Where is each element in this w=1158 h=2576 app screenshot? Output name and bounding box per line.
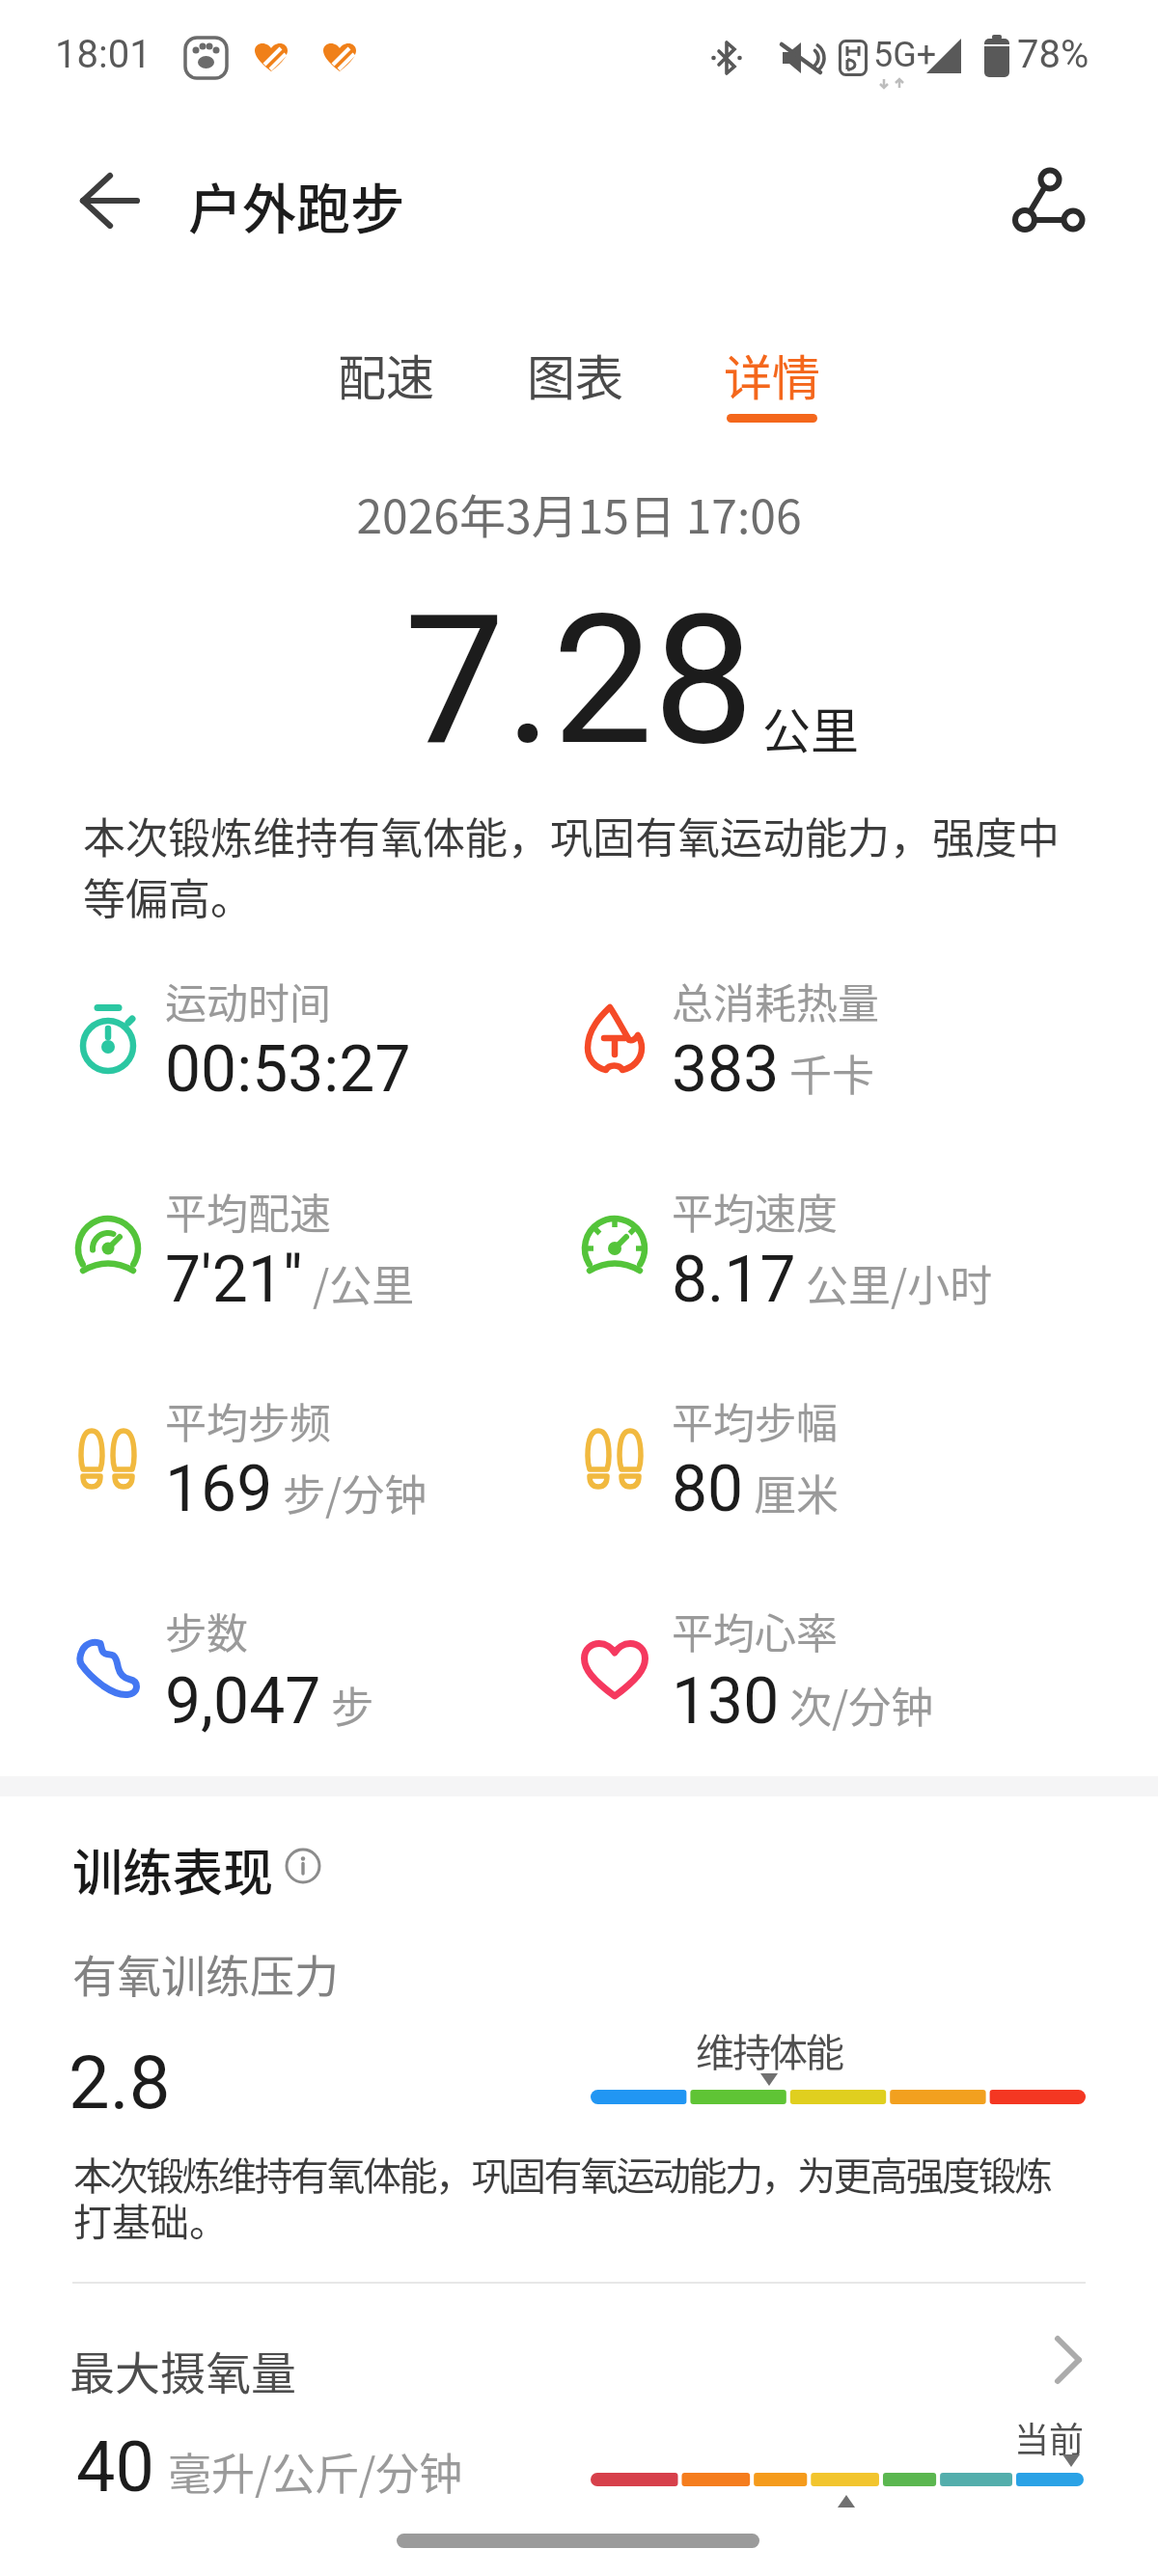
staticText: 千卡 — [789, 1042, 874, 1104]
staticText: /公里 — [313, 1252, 415, 1314]
staticText: 130 — [672, 1664, 780, 1739]
staticText: 户外跑步 — [188, 166, 404, 244]
staticText: 383 — [672, 1032, 780, 1107]
staticText: 平均配速 — [165, 1181, 331, 1241]
staticText: 平均心率 — [672, 1601, 838, 1660]
staticText: 详情 — [724, 340, 820, 409]
button[interactable] — [58, 2316, 1100, 2431]
staticText: 80 — [672, 1452, 744, 1526]
staticText: 厘米 — [754, 1462, 839, 1523]
staticText: 有氧训练压力 — [72, 1941, 339, 2006]
button[interactable] — [58, 159, 154, 246]
staticText: 运动时间 — [165, 971, 331, 1030]
staticText: 00:53:27 — [165, 1032, 411, 1107]
button[interactable] — [508, 318, 652, 415]
staticText: 训练表现 — [72, 1833, 274, 1905]
staticText: 当前 — [1014, 2412, 1085, 2462]
staticText: 40 — [76, 2426, 154, 2507]
staticText: 步 — [331, 1674, 373, 1736]
staticText: 等偏高。 — [83, 865, 253, 927]
staticText: 步/分钟 — [283, 1462, 427, 1523]
staticText: 2.8 — [69, 2040, 171, 2125]
staticText: 78% — [1017, 32, 1089, 77]
staticText: 打基础。 — [73, 2192, 228, 2248]
staticText: 最大摄氧量 — [69, 2337, 296, 2402]
staticText: 配速 — [338, 340, 434, 409]
staticText: 图表 — [527, 340, 623, 409]
staticText: 平均步频 — [165, 1390, 331, 1450]
staticText: 169 — [165, 1452, 273, 1526]
staticText: 本次锻炼维持有氧体能，巩固有氧运动能力，强度中 — [83, 805, 1060, 866]
staticText: 9,047 — [165, 1664, 321, 1739]
staticText: 2026年3月15日 17:06 — [0, 480, 1158, 547]
staticText: 7.28 — [0, 575, 1158, 785]
staticText: 步数 — [165, 1601, 248, 1660]
staticText: 总消耗热量 — [672, 971, 879, 1030]
staticText: 平均步幅 — [672, 1390, 838, 1450]
button[interactable] — [704, 318, 849, 415]
staticText: 7'21'' — [165, 1243, 303, 1317]
staticText: 18:01 — [55, 32, 152, 77]
button[interactable] — [994, 154, 1100, 251]
staticText: 毫升/公斤/分钟 — [168, 2440, 463, 2503]
staticText: 8.17 — [672, 1243, 796, 1317]
button[interactable] — [318, 318, 463, 415]
staticText: 平均速度 — [672, 1181, 838, 1241]
staticText: 次/分钟 — [789, 1674, 934, 1736]
staticText: 维持体能 — [696, 2022, 842, 2078]
staticText: 公里 — [762, 693, 859, 762]
staticText: 公里/小时 — [806, 1252, 993, 1314]
staticText: 5G+ — [873, 35, 937, 75]
staticText: 本次锻炼维持有氧体能，巩固有氧运动能力，为更高强度锻炼 — [73, 2146, 1051, 2202]
